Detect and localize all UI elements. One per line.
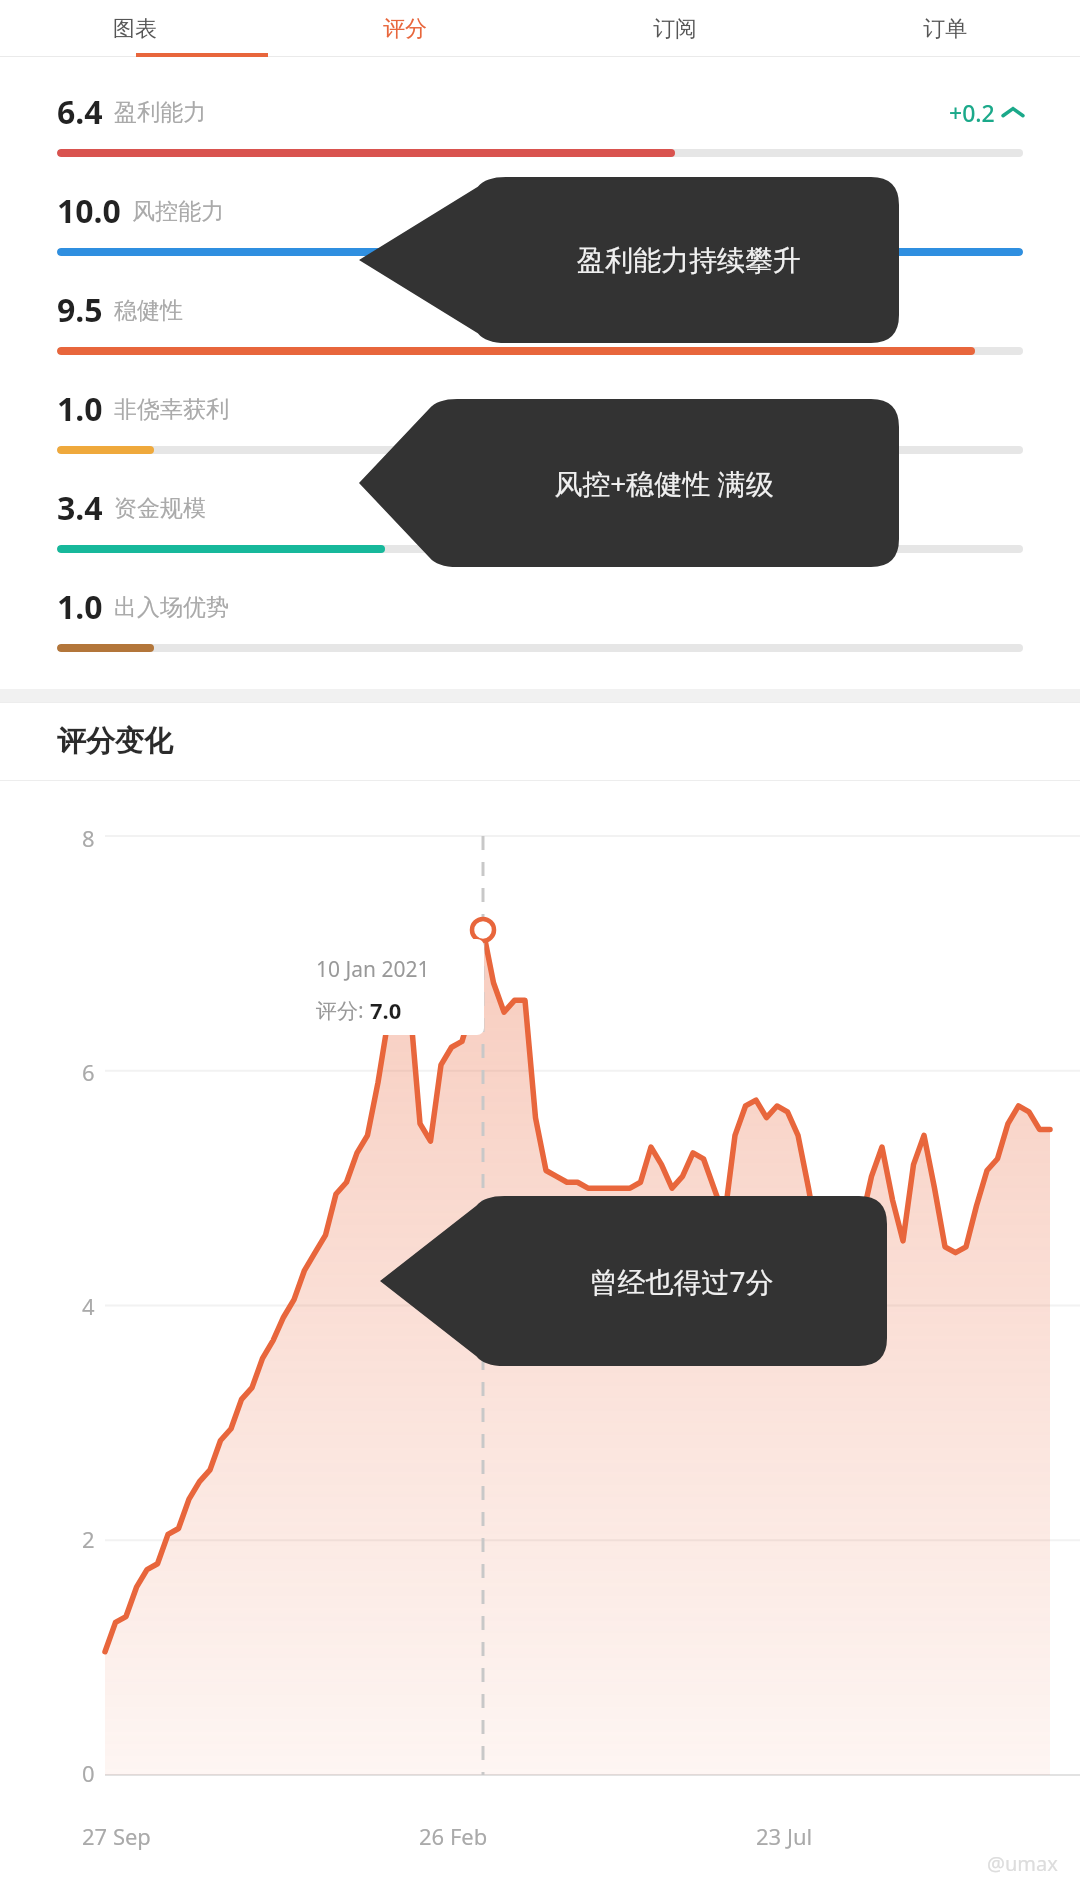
staticText: 非侥幸获利 bbox=[114, 395, 229, 424]
staticText: 订单 bbox=[923, 15, 967, 43]
staticText: 1.0 bbox=[57, 387, 103, 431]
staticText: 10.0 bbox=[57, 189, 121, 233]
button[interactable]: 1.0 bbox=[0, 572, 1080, 671]
staticText: 盈利能力 bbox=[114, 98, 206, 127]
staticText: 盈利能力持续攀升 bbox=[577, 243, 801, 278]
button[interactable]: 1.0 bbox=[0, 374, 1080, 473]
button[interactable]: 曾经也得过7分 bbox=[380, 1196, 887, 1366]
staticText: 4 bbox=[82, 1291, 95, 1321]
staticText: 3.4 bbox=[57, 486, 103, 530]
staticText: 27 Sep bbox=[82, 1821, 151, 1851]
staticText: 0 bbox=[82, 1758, 95, 1788]
button[interactable]: 订阅 bbox=[540, 0, 810, 57]
button[interactable]: 评分 bbox=[270, 0, 540, 57]
staticText: 图表 bbox=[113, 15, 157, 43]
staticText: 出入场优势 bbox=[114, 593, 229, 622]
staticText: 曾经也得过7分 bbox=[589, 1262, 774, 1300]
staticText: 稳健性 bbox=[114, 296, 183, 325]
staticText: 1.0 bbox=[57, 585, 103, 629]
button[interactable]: 9.5 bbox=[0, 275, 1080, 374]
staticText: 风控能力 bbox=[132, 197, 224, 226]
staticText: 8 bbox=[82, 823, 95, 853]
button[interactable]: 订单 bbox=[810, 0, 1080, 57]
staticText: 评分 bbox=[383, 15, 427, 43]
staticText: 评分: bbox=[316, 996, 370, 1025]
staticText: @umax bbox=[987, 1850, 1058, 1877]
staticText: 7.0 bbox=[370, 995, 402, 1025]
staticText: +0.2 bbox=[949, 97, 995, 128]
button[interactable]: 3.4 bbox=[0, 473, 1080, 572]
staticText: 6.4 bbox=[57, 90, 103, 134]
staticText: 9.5 bbox=[57, 288, 103, 332]
staticText: 资金规模 bbox=[114, 494, 206, 523]
button[interactable]: 6.4 bbox=[0, 77, 1080, 176]
staticText: 风控+稳健性 满级 bbox=[554, 464, 774, 502]
button[interactable]: 10.0 bbox=[0, 176, 1080, 275]
button[interactable]: 风控+稳健性 满级 bbox=[359, 399, 899, 567]
staticText: 评分变化 bbox=[57, 723, 173, 760]
button[interactable]: 图表 bbox=[0, 0, 270, 57]
staticText: 10 Jan 2021 bbox=[316, 955, 430, 984]
staticText: 订阅 bbox=[653, 15, 697, 43]
button[interactable]: 盈利能力持续攀升 bbox=[359, 177, 899, 343]
staticText: 23 Jul bbox=[756, 1821, 813, 1851]
staticText: 6 bbox=[82, 1057, 95, 1087]
staticText: 26 Feb bbox=[419, 1821, 488, 1851]
staticText: 2 bbox=[82, 1524, 95, 1554]
